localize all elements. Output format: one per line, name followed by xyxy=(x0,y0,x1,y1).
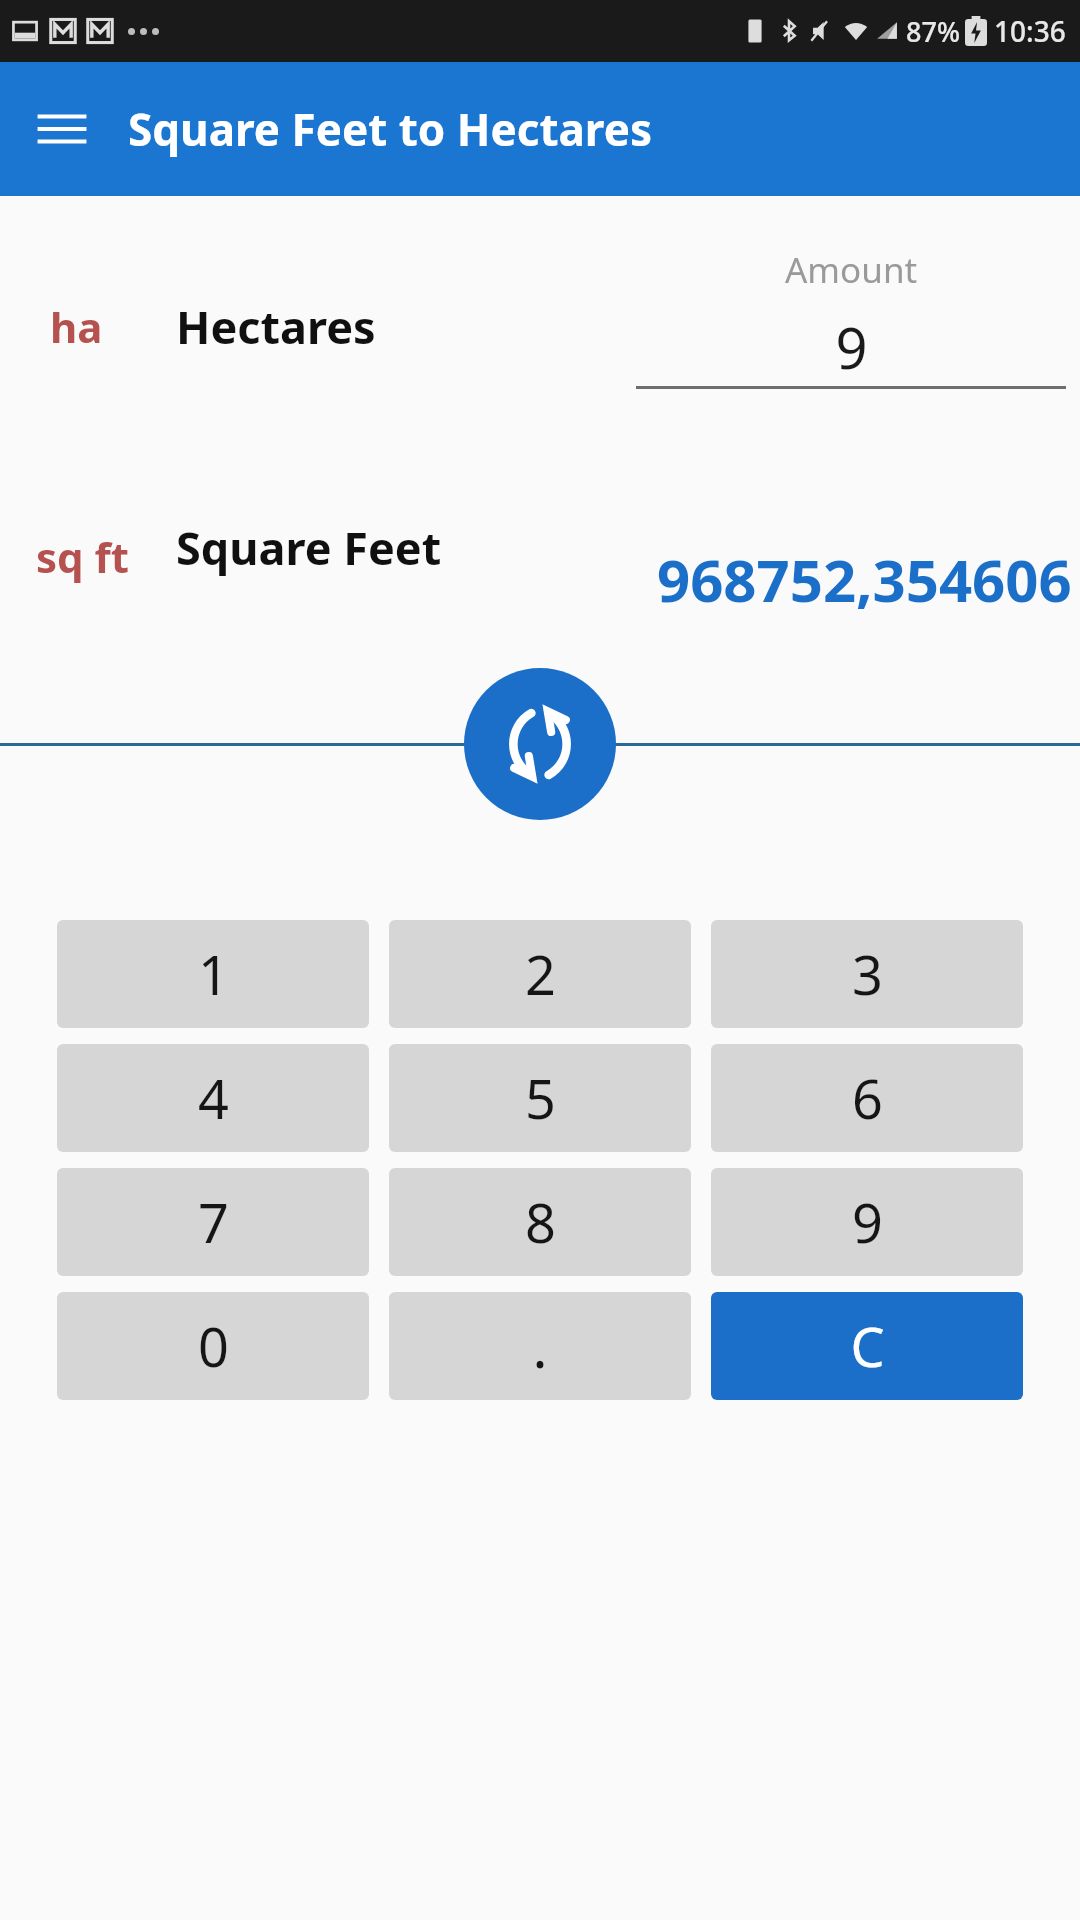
staticText: 10:36 xyxy=(994,12,1066,50)
staticText: 3 xyxy=(852,937,883,1011)
staticText: 2 xyxy=(525,937,556,1011)
button[interactable]: 6 xyxy=(711,1044,1023,1152)
button[interactable]: 1 xyxy=(57,920,369,1028)
button[interactable]: Swap units xyxy=(464,668,616,820)
staticText: C xyxy=(850,1309,885,1383)
button[interactable]: 2 xyxy=(389,920,691,1028)
staticText: 1 xyxy=(198,937,229,1011)
button[interactable]: Open navigation menu xyxy=(24,91,100,167)
staticText: 4 xyxy=(198,1061,229,1135)
button[interactable]: 8 xyxy=(389,1168,691,1276)
button[interactable]: C xyxy=(711,1292,1023,1400)
staticText: 9 xyxy=(852,1185,883,1259)
staticText: 0 xyxy=(198,1309,229,1383)
button[interactable]: 9 xyxy=(711,1168,1023,1276)
button[interactable]: 3 xyxy=(711,920,1023,1028)
staticText: 6 xyxy=(852,1061,883,1135)
button[interactable]: 9 xyxy=(636,308,1066,386)
staticText: 7 xyxy=(198,1185,229,1259)
staticText: Square Feet to Hectares xyxy=(128,99,652,159)
button[interactable]: 0 xyxy=(57,1292,369,1400)
staticText: 5 xyxy=(525,1061,556,1135)
button[interactable]: 7 xyxy=(57,1168,369,1276)
staticText: ha xyxy=(50,298,103,355)
staticText: sq ft xyxy=(36,528,130,585)
staticText: . xyxy=(532,1308,548,1384)
button[interactable]: . xyxy=(389,1292,691,1400)
staticText: Square Feet xyxy=(176,517,442,578)
staticText: 87% xyxy=(906,13,960,50)
button[interactable]: 4 xyxy=(57,1044,369,1152)
staticText: Amount xyxy=(785,246,918,294)
button[interactable]: 5 xyxy=(389,1044,691,1152)
staticText: Hectares xyxy=(176,296,376,357)
staticText: 8 xyxy=(525,1185,556,1259)
staticText: 968752,354606 xyxy=(657,540,1072,619)
staticText: 9 xyxy=(835,309,868,385)
